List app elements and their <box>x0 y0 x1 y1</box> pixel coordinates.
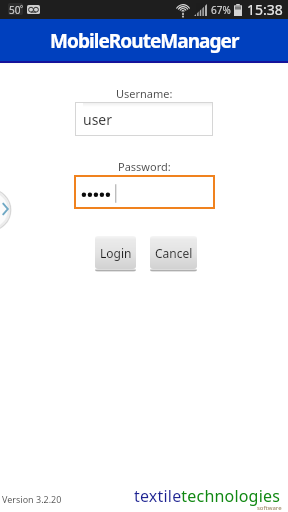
staticText: Cancel <box>155 245 193 261</box>
button[interactable]: Login <box>95 236 136 269</box>
button[interactable]: Cancel <box>150 236 197 269</box>
staticText: Version 3.2.20 <box>2 493 62 505</box>
staticText: Username: <box>116 86 173 101</box>
button[interactable] <box>74 175 215 209</box>
staticText: 15:38 <box>247 0 283 19</box>
staticText: textiletechnologies <box>134 485 281 507</box>
staticText: 50 <box>9 3 21 15</box>
button[interactable]: Open navigation panel <box>0 189 11 231</box>
staticText: Password: <box>118 159 171 174</box>
staticText: Login <box>100 245 132 261</box>
staticText: software <box>257 504 282 512</box>
button[interactable]: user <box>75 102 213 136</box>
staticText: MobileRouteManager <box>50 28 239 54</box>
staticText: 67% <box>211 3 231 17</box>
staticText: user <box>83 110 113 129</box>
